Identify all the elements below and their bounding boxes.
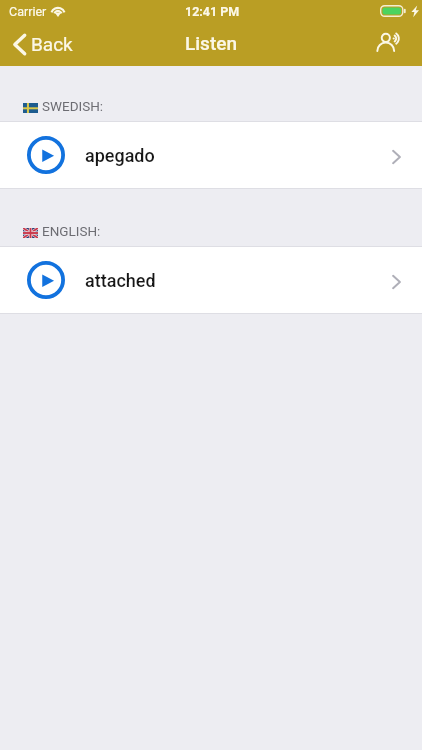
staticText: Listen	[185, 32, 237, 54]
button[interactable]: apegado	[0, 122, 422, 189]
staticText: Carrier	[9, 4, 47, 19]
staticText: ENGLISH:	[42, 223, 101, 239]
staticText: SWEDISH:	[42, 98, 104, 114]
button[interactable]: Speak	[366, 27, 422, 61]
staticText: Back	[31, 33, 73, 55]
staticText: apegado	[85, 145, 155, 166]
staticText: attached	[85, 270, 156, 291]
staticText: 12:41 PM	[185, 4, 240, 19]
button[interactable]: Back	[0, 28, 87, 60]
button[interactable]: attached	[0, 247, 422, 314]
